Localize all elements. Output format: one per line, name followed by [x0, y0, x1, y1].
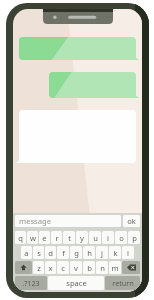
staticText: b [87, 263, 92, 273]
button[interactable]: k [109, 246, 121, 259]
button[interactable]: w [27, 231, 38, 244]
button[interactable]: z [33, 261, 44, 274]
button[interactable] [19, 37, 136, 65]
button[interactable]: b [83, 261, 95, 274]
button[interactable]: message [15, 215, 121, 227]
staticText: l [127, 248, 129, 258]
button[interactable]: h [83, 246, 95, 259]
button[interactable]: x [45, 261, 56, 274]
button[interactable]: t [63, 231, 75, 244]
staticText: n [100, 263, 105, 273]
staticText: t [68, 233, 71, 243]
staticText: ok [127, 216, 136, 226]
button[interactable]: Backspace [122, 261, 140, 274]
button[interactable]: r [51, 231, 62, 244]
button[interactable] [49, 72, 136, 103]
button[interactable]: v [70, 261, 82, 274]
button[interactable]: Shift [15, 261, 32, 274]
button[interactable]: g [70, 246, 82, 259]
staticText: u [93, 233, 98, 243]
button[interactable]: c [57, 261, 69, 274]
button[interactable]: n [96, 261, 108, 274]
button[interactable]: j [96, 246, 108, 259]
staticText: h [87, 248, 92, 258]
staticText: s [37, 248, 41, 258]
staticText: m [111, 263, 119, 273]
staticText: k [113, 248, 118, 258]
button[interactable]: q [15, 231, 26, 244]
staticText: i [107, 233, 109, 243]
staticText: y [80, 233, 84, 243]
button[interactable]: .?123 [15, 276, 47, 290]
staticText: message [19, 216, 51, 226]
staticText: .?123 [22, 278, 40, 288]
staticText: r [55, 233, 59, 243]
staticText: w [30, 233, 36, 243]
staticText: o [119, 233, 124, 243]
staticText: q [18, 233, 23, 243]
button[interactable]: o [115, 231, 127, 244]
staticText: e [42, 233, 47, 243]
staticText: p [132, 233, 137, 243]
button[interactable]: return [105, 276, 140, 290]
button[interactable]: y [76, 231, 88, 244]
button[interactable]: d [45, 246, 56, 259]
button[interactable]: space [48, 276, 104, 290]
staticText: z [37, 263, 41, 273]
staticText: j [101, 248, 103, 258]
button[interactable] [19, 110, 136, 168]
button[interactable]: l [122, 246, 134, 259]
button[interactable]: e [39, 231, 50, 244]
button[interactable]: u [89, 231, 101, 244]
staticText: d [48, 248, 53, 258]
button[interactable]: i [102, 231, 114, 244]
staticText: g [74, 248, 79, 258]
button[interactable]: f [57, 246, 69, 259]
button[interactable]: m [109, 261, 121, 274]
staticText: return [112, 278, 134, 288]
staticText: x [48, 263, 53, 273]
button[interactable]: p [128, 231, 140, 244]
staticText: a [24, 248, 29, 258]
staticText: space [66, 278, 87, 288]
staticText: v [74, 263, 78, 273]
staticText: f [62, 248, 65, 258]
button[interactable]: a [21, 246, 32, 259]
button[interactable]: ok [123, 215, 140, 227]
staticText: c [61, 263, 65, 273]
button[interactable]: s [33, 246, 44, 259]
